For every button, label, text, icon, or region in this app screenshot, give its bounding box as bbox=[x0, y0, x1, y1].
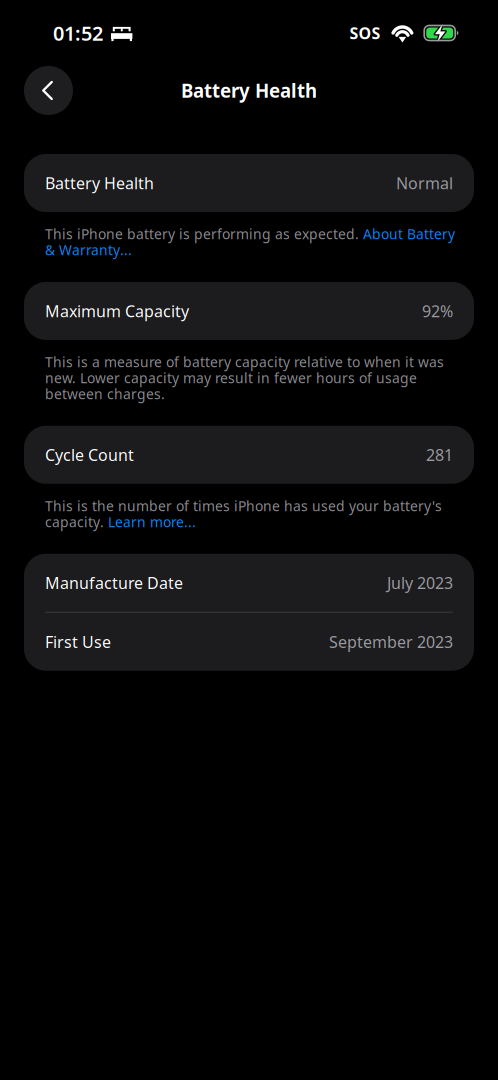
staticText: 01:52 bbox=[53, 19, 103, 47]
button[interactable]: Cycle Count bbox=[24, 426, 474, 484]
staticText: 281 bbox=[426, 444, 453, 466]
staticText: This iPhone battery is performing as exp… bbox=[45, 226, 455, 258]
button[interactable]: First Use bbox=[24, 613, 474, 671]
button[interactable]: Manufacture Date bbox=[24, 554, 474, 612]
staticText: Cycle Count bbox=[45, 444, 134, 466]
staticText: This is the number of times iPhone has u… bbox=[45, 498, 442, 530]
staticText: 92% bbox=[422, 300, 453, 322]
staticText: Maximum Capacity bbox=[45, 300, 189, 322]
staticText: Battery Health bbox=[181, 78, 317, 103]
button[interactable]: Back bbox=[24, 66, 73, 115]
button[interactable]: Battery Health bbox=[24, 154, 474, 212]
staticText: SOS bbox=[350, 22, 381, 44]
button[interactable]: Maximum Capacity bbox=[24, 282, 474, 340]
staticText: July 2023 bbox=[387, 572, 453, 594]
staticText: Manufacture Date bbox=[45, 572, 183, 594]
staticText: Normal bbox=[396, 172, 453, 194]
staticText: First Use bbox=[45, 631, 111, 653]
staticText: Battery Health bbox=[45, 172, 154, 194]
staticText: September 2023 bbox=[329, 631, 453, 653]
staticText: This is a measure of battery capacity re… bbox=[45, 354, 444, 402]
